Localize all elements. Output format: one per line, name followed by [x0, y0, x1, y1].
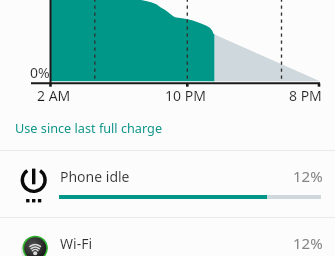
button[interactable]: Use since last full charge	[0, 106, 335, 150]
other: Wi-Fi	[18, 217, 52, 256]
staticText: 10 PM	[165, 86, 206, 105]
staticText: 0%	[30, 63, 50, 82]
staticText: 12%	[293, 166, 323, 186]
button[interactable]: Wi-Fi	[0, 217, 335, 256]
button[interactable]: Phone idle	[0, 150, 335, 217]
staticText: Wi-Fi	[60, 234, 93, 253]
staticText: 12%	[293, 233, 323, 253]
staticText: Use since last full charge	[15, 119, 163, 136]
staticText: Phone idle	[60, 167, 130, 186]
other: Phone idle	[18, 150, 52, 206]
staticText: 8 PM	[289, 86, 322, 105]
staticText: 2 AM	[37, 86, 71, 105]
